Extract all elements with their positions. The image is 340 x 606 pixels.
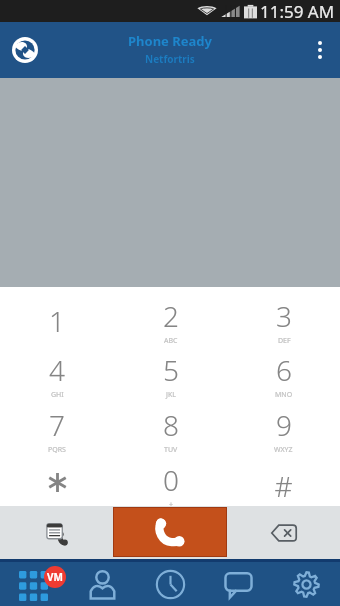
staticText: 9 xyxy=(276,406,292,444)
staticText: 2 xyxy=(163,297,179,335)
staticText: ABC xyxy=(164,336,178,346)
button[interactable] xyxy=(0,451,114,506)
staticText: 8 xyxy=(163,406,179,444)
button[interactable]: Dialpad xyxy=(0,562,68,606)
staticText: Phone Ready xyxy=(128,32,212,50)
staticText: DEF xyxy=(278,336,291,346)
staticText: 11:59 AM xyxy=(260,0,335,22)
button[interactable]: 0 xyxy=(114,451,227,506)
button[interactable]: Settings xyxy=(272,562,340,606)
button[interactable]: 7 xyxy=(0,396,114,451)
staticText: 0 xyxy=(163,461,179,499)
staticText: 5 xyxy=(163,351,179,389)
staticText: 7 xyxy=(49,406,65,444)
staticText: Netfortris xyxy=(145,52,195,66)
staticText: PQRS xyxy=(48,445,66,455)
staticText: TUV xyxy=(164,445,178,455)
staticText: MNO xyxy=(275,390,293,400)
button[interactable]: 1 xyxy=(0,287,114,341)
staticText: VM xyxy=(47,570,63,584)
staticText: + xyxy=(169,500,174,510)
button[interactable]: 8 xyxy=(114,396,227,451)
staticText: # xyxy=(274,467,293,505)
button[interactable]: Messages xyxy=(0,506,113,559)
staticText: 6 xyxy=(276,351,292,389)
button[interactable]: More options xyxy=(300,22,340,78)
staticText: WXYZ xyxy=(274,445,293,455)
button[interactable]: # xyxy=(227,451,340,506)
staticText: GHI xyxy=(51,390,64,400)
button[interactable]: 3 xyxy=(227,287,340,341)
button[interactable]: Messages xyxy=(204,562,272,606)
button[interactable]: Backspace xyxy=(227,506,340,559)
button[interactable]: 4 xyxy=(0,341,114,396)
button[interactable]: 2 xyxy=(114,287,227,341)
staticText: JKL xyxy=(166,390,176,400)
button[interactable]: Contacts xyxy=(68,562,136,606)
button[interactable]: Call xyxy=(114,508,226,556)
staticText: 3 xyxy=(276,297,292,335)
button[interactable]: Recents xyxy=(136,562,204,606)
button[interactable]: 6 xyxy=(227,341,340,396)
staticText: 1 xyxy=(49,302,65,340)
staticText: 4 xyxy=(49,351,65,389)
button[interactable]: 5 xyxy=(114,341,227,396)
button[interactable]: 9 xyxy=(227,396,340,451)
button[interactable]: App logo xyxy=(5,30,45,70)
